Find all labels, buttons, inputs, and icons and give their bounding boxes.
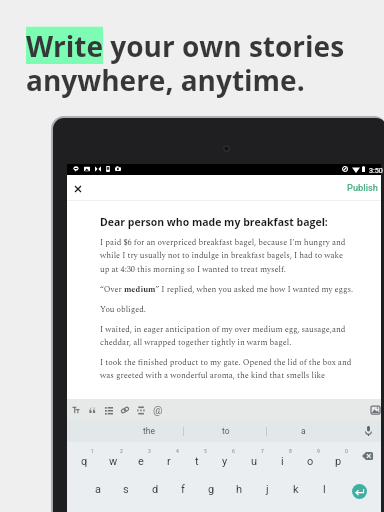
- button[interactable]: Block quote: [84, 399, 100, 420]
- staticText: a: [95, 483, 101, 496]
- staticText: “Over medium” I replied, when you asked …: [100, 283, 353, 296]
- button[interactable]: 4: [155, 442, 183, 470]
- other: Media: [95, 166, 101, 172]
- staticText: 3: [148, 448, 151, 454]
- staticText: Publish: [347, 182, 379, 193]
- staticText: Dear person who made my breakfast bagel:: [100, 215, 328, 229]
- staticText: r: [167, 455, 171, 468]
- staticText: 3:50: [369, 166, 383, 174]
- button[interactable]: Voice input: [354, 420, 382, 442]
- button[interactable]: 9: [296, 442, 324, 470]
- button[interactable]: 3: [127, 442, 155, 470]
- staticText: 8: [289, 448, 292, 454]
- button[interactable]: h: [225, 470, 253, 498]
- staticText: l: [323, 483, 326, 496]
- staticText: k: [293, 483, 299, 496]
- button[interactable]: 5: [183, 442, 211, 470]
- button[interactable]: 2: [99, 442, 127, 470]
- staticText: 0: [345, 448, 348, 454]
- button[interactable]: 1: [70, 442, 98, 470]
- button[interactable]: 0: [324, 442, 352, 470]
- button[interactable]: Enter: [352, 484, 367, 499]
- button[interactable]: d: [141, 470, 169, 498]
- staticText: u: [251, 455, 258, 468]
- staticText: 5: [204, 448, 207, 454]
- other: Messages: [73, 166, 79, 172]
- staticText: the: [143, 426, 155, 436]
- button[interactable]: Backspace: [353, 442, 381, 470]
- button[interactable]: Close: [67, 175, 88, 200]
- button[interactable]: 7: [240, 442, 268, 470]
- button[interactable]: the: [110, 420, 188, 442]
- staticText: I paid $6 for an overpriced breakfast ba…: [100, 236, 353, 276]
- staticText: i: [281, 455, 284, 468]
- button[interactable]: Insert divider: [133, 399, 149, 420]
- staticText: f: [181, 483, 185, 496]
- button[interactable]: a: [264, 420, 342, 442]
- staticText: s: [123, 483, 129, 496]
- button[interactable]: Mention someone: [150, 399, 166, 420]
- staticText: Write your own stories anywhere, anytime…: [26, 27, 345, 99]
- staticText: You obliged.: [100, 303, 146, 316]
- staticText: y: [222, 455, 228, 468]
- button[interactable]: j: [253, 470, 281, 498]
- staticText: 7: [261, 448, 264, 454]
- staticText: I took the finished product to my gate. …: [100, 356, 353, 382]
- other: Camera: [115, 166, 121, 172]
- button[interactable]: Insert link: [117, 399, 133, 420]
- staticText: 6: [232, 448, 235, 454]
- staticText: e: [138, 455, 144, 468]
- staticText: g: [208, 483, 215, 496]
- staticText: @: [153, 404, 163, 416]
- button[interactable]: s: [112, 470, 140, 498]
- button[interactable]: l: [310, 470, 338, 498]
- staticText: 1: [91, 448, 94, 454]
- staticText: a: [301, 426, 306, 436]
- staticText: w: [109, 455, 118, 468]
- button[interactable]: a: [84, 470, 112, 498]
- staticText: to: [222, 426, 230, 436]
- staticText: 2: [120, 448, 123, 454]
- button[interactable]: g: [197, 470, 225, 498]
- button[interactable]: 6: [211, 442, 239, 470]
- button[interactable]: 8: [268, 442, 296, 470]
- other: Device: [105, 166, 111, 172]
- button[interactable]: Text style: [68, 399, 84, 420]
- button[interactable]: to: [187, 420, 265, 442]
- staticText: q: [81, 455, 88, 468]
- staticText: 9: [317, 448, 320, 454]
- staticText: t: [195, 455, 199, 468]
- button[interactable]: k: [282, 470, 310, 498]
- staticText: 4: [176, 448, 179, 454]
- staticText: d: [152, 483, 159, 496]
- button[interactable]: f: [169, 470, 197, 498]
- button[interactable]: Insert image: [366, 399, 384, 420]
- staticText: h: [236, 483, 243, 496]
- staticText: p: [335, 455, 342, 468]
- staticText: j: [266, 483, 269, 496]
- staticText: o: [307, 455, 314, 468]
- button[interactable]: Publish: [342, 175, 384, 200]
- button[interactable]: Bulleted list: [101, 399, 117, 420]
- other: Screenshot: [84, 166, 90, 172]
- staticText: I waited, in eager anticipation of my ov…: [100, 323, 353, 349]
